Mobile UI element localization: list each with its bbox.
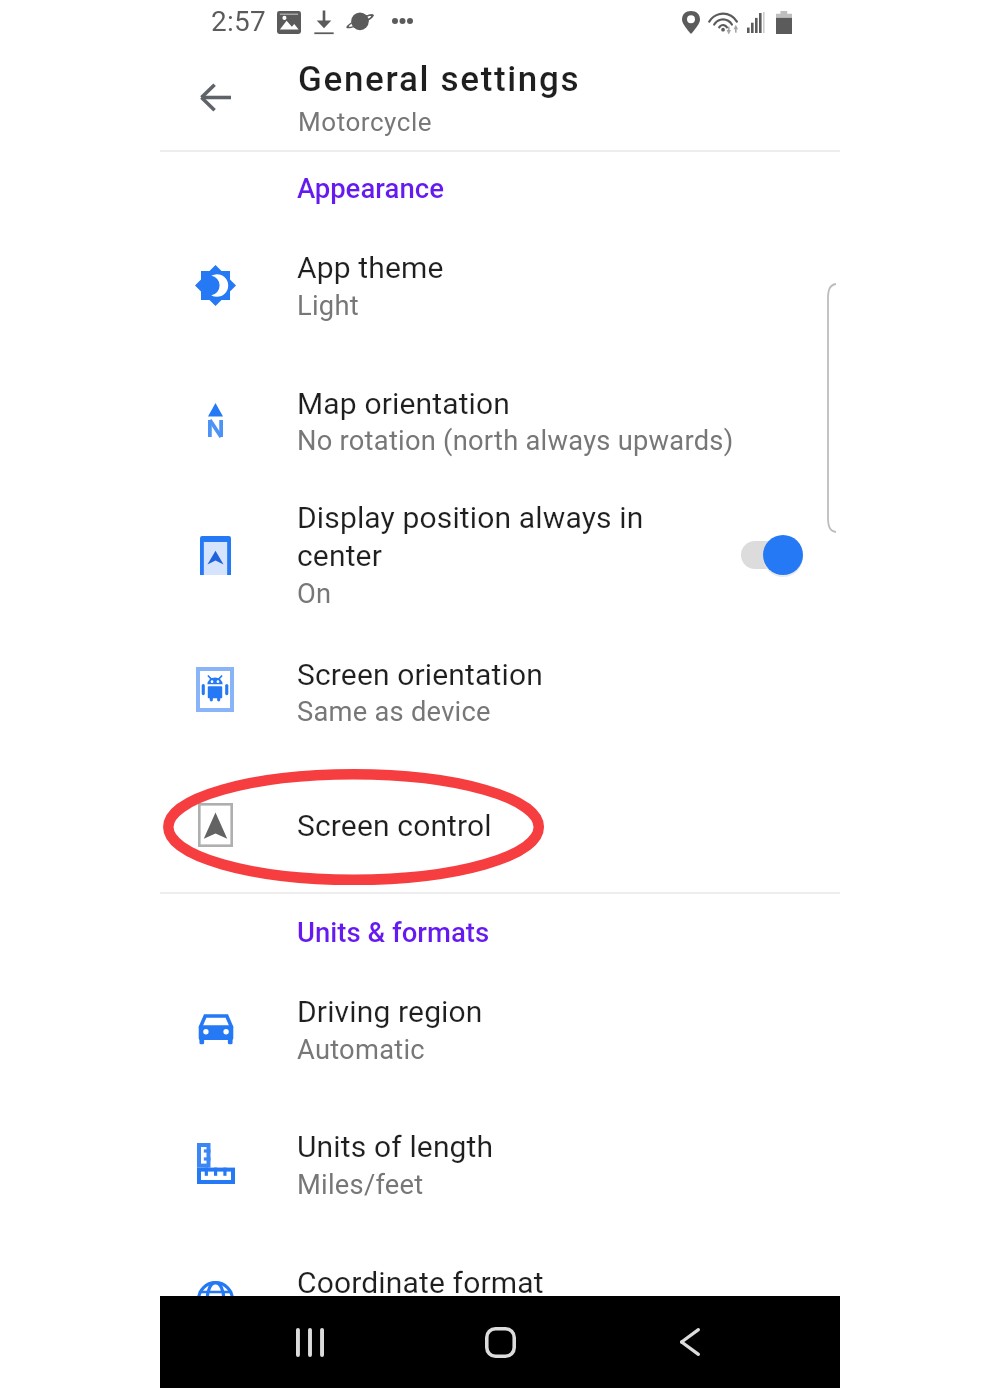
staticText: On — [297, 578, 332, 610]
staticText: Light — [297, 290, 359, 322]
staticText: Miles/feet — [297, 1169, 424, 1201]
staticText: Display position always in center — [297, 500, 644, 573]
staticText: No rotation (north always upwards) — [297, 425, 734, 457]
staticText: Units & formats — [297, 916, 490, 948]
button[interactable]: Back — [650, 1302, 730, 1382]
button[interactable]: App theme — [160, 228, 840, 356]
staticText: Automatic — [297, 1034, 425, 1066]
button[interactable]: Screen orientation — [160, 636, 840, 764]
button[interactable]: Toggle display position always in center — [741, 535, 803, 575]
staticText: Appearance — [297, 172, 444, 204]
button[interactable]: Display position always in center — [160, 494, 840, 654]
staticText: General settings — [298, 59, 581, 100]
button[interactable]: Home — [460, 1302, 540, 1382]
staticText: Screen control — [297, 808, 492, 843]
staticText: Driving region — [297, 994, 483, 1029]
staticText: Screen orientation — [297, 657, 543, 692]
button[interactable]: Recents — [270, 1302, 350, 1382]
staticText: 2:57 — [211, 5, 266, 38]
button[interactable]: Map orientation — [160, 362, 840, 490]
staticText: Motorcycle — [298, 107, 433, 137]
button[interactable]: Back — [184, 66, 246, 128]
staticText: App theme — [297, 250, 444, 285]
button[interactable]: Driving region — [160, 972, 840, 1100]
button[interactable]: Screen control — [160, 776, 840, 882]
button[interactable]: Coordinate format — [160, 1244, 840, 1296]
staticText: Units of length — [297, 1129, 494, 1164]
button[interactable]: Units of length — [160, 1108, 840, 1236]
staticText: Map orientation — [297, 386, 511, 421]
staticText: Coordinate format — [297, 1265, 544, 1300]
staticText: Same as device — [297, 696, 491, 728]
